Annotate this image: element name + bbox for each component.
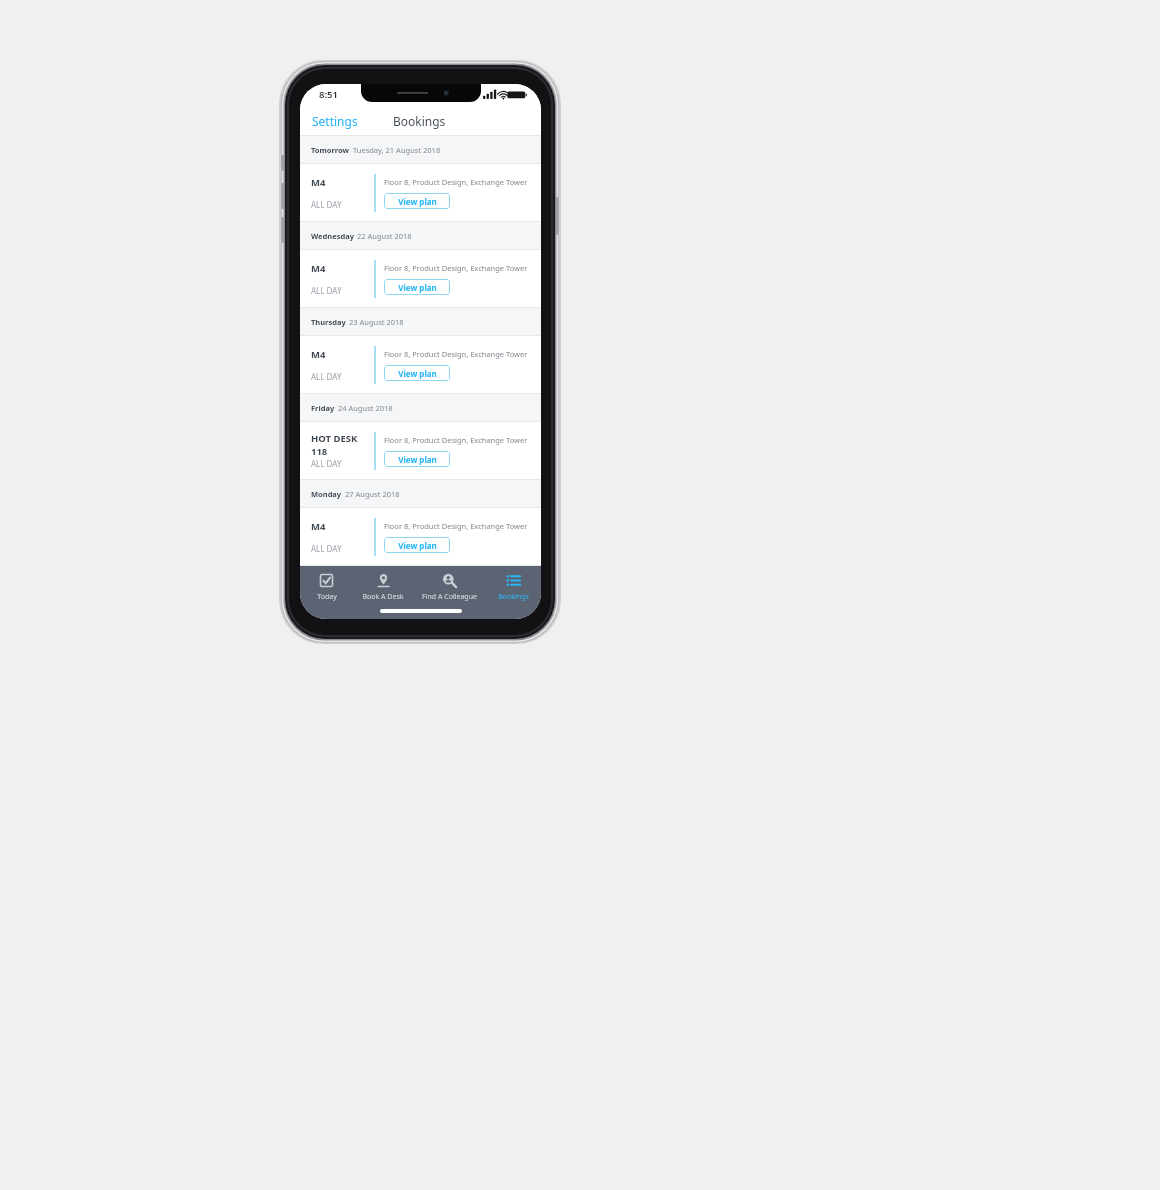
staticText: Floor 8, Product Design, Exchange Tower [384, 263, 528, 273]
staticText: Friday [311, 403, 335, 413]
staticText: M4 [311, 348, 326, 361]
staticText: ALL DAY [311, 458, 342, 469]
button[interactable]: Settings [304, 108, 366, 134]
staticText: HOT DESK [311, 432, 358, 445]
button[interactable]: Bookings [387, 108, 452, 134]
staticText: 27 August 2018 [345, 489, 400, 499]
staticText: ALL DAY [311, 543, 342, 554]
staticText: Wednesday [311, 231, 354, 241]
staticText: View plan [398, 454, 437, 465]
staticText: Find A Colleague [422, 592, 477, 602]
staticText: Bookings [393, 113, 446, 129]
staticText: ALL DAY [311, 371, 342, 382]
staticText: Bookings [498, 592, 529, 602]
staticText: Floor 8, Product Design, Exchange Tower [384, 435, 528, 445]
staticText: 23 August 2018 [349, 317, 404, 327]
staticText: Floor 8, Product Design, Exchange Tower [384, 177, 528, 187]
staticText: Floor 8, Product Design, Exchange Tower [384, 349, 528, 359]
staticText: Book A Desk [362, 592, 404, 602]
staticText: 24 August 2018 [338, 403, 393, 413]
button[interactable]: Today [300, 566, 353, 602]
button[interactable]: Find A Colleague [413, 566, 485, 602]
staticText: Floor 8, Product Design, Exchange Tower [384, 521, 528, 531]
staticText: M4 [311, 520, 326, 533]
staticText: 118 [311, 445, 328, 458]
staticText: Monday [311, 489, 342, 499]
staticText: ALL DAY [311, 199, 342, 210]
button[interactable]: View plan [384, 365, 450, 381]
button[interactable]: M4 [300, 250, 541, 307]
button[interactable]: M4 [300, 164, 541, 221]
staticText: 8:51 [319, 88, 338, 101]
button[interactable]: View plan [384, 279, 450, 295]
staticText: View plan [398, 196, 437, 207]
button[interactable]: M4 [300, 336, 541, 393]
staticText: M4 [311, 262, 326, 275]
staticText: M4 [311, 176, 326, 189]
button[interactable]: View plan [384, 193, 450, 209]
staticText: 22 August 2018 [357, 231, 412, 241]
staticText: Settings [312, 113, 358, 129]
button[interactable]: Bookings [485, 566, 541, 602]
staticText: View plan [398, 368, 437, 379]
button[interactable]: M4 [300, 508, 541, 565]
button[interactable]: View plan [384, 451, 450, 467]
staticText: View plan [398, 282, 437, 293]
button[interactable]: Book A Desk [353, 566, 413, 602]
button[interactable]: View plan [384, 537, 450, 553]
staticText: Today [317, 592, 337, 602]
button[interactable]: HOT DESK [300, 422, 541, 479]
staticText: ALL DAY [311, 285, 342, 296]
staticText: Thursday [311, 317, 346, 327]
staticText: Tomorrow [311, 145, 350, 155]
staticText: Tuesday, 21 August 2018 [353, 145, 441, 155]
staticText: View plan [398, 540, 437, 551]
